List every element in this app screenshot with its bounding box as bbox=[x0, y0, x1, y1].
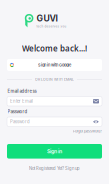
staticText: Password bbox=[10, 119, 30, 124]
staticText: Password bbox=[7, 109, 27, 114]
staticText: Enter Email bbox=[10, 99, 33, 104]
staticText: GUVI bbox=[36, 13, 57, 23]
staticText: OR LOGIN WITH EMAIL bbox=[35, 77, 74, 82]
staticText: Not Registered Yet? Sign up bbox=[29, 166, 80, 171]
button[interactable]: Sign in bbox=[7, 144, 102, 159]
button[interactable]: Forgot password? bbox=[73, 129, 102, 133]
button[interactable]: Sign in with Google bbox=[7, 59, 102, 71]
staticText: tech deserves you bbox=[36, 25, 66, 28]
staticText: Sign in bbox=[47, 148, 62, 155]
staticText: Forgot password? bbox=[73, 129, 102, 133]
staticText: Sign in with Google bbox=[38, 63, 71, 67]
button[interactable]: Not Registered Yet? Sign up bbox=[0, 166, 109, 171]
staticText: Email address bbox=[7, 88, 36, 94]
staticText: Welcome back...! bbox=[22, 43, 87, 54]
